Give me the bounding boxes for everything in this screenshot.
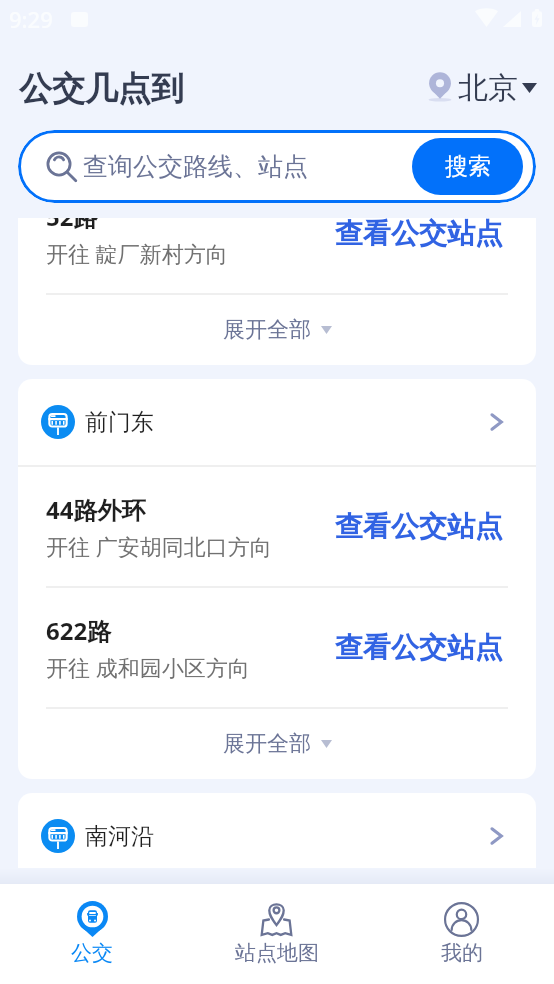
staticText: 9:29: [9, 4, 53, 34]
staticText: 展开全部: [223, 316, 311, 344]
staticText: 622路: [46, 614, 112, 647]
staticText: 南河沿: [85, 822, 154, 851]
staticText: 我的: [441, 940, 483, 966]
button[interactable]: 622路: [18, 588, 536, 707]
staticText: 前门东: [85, 408, 154, 437]
button[interactable]: 南河沿: [18, 793, 536, 868]
button[interactable]: 44路外环: [18, 467, 536, 586]
staticText: 北京: [458, 69, 518, 107]
button[interactable]: 52路: [18, 218, 536, 293]
staticText: 公交几点到: [19, 68, 184, 110]
button[interactable]: Search: [18, 130, 536, 203]
staticText: 开往 广安胡同北口方向: [46, 531, 272, 561]
staticText: 查看公交站点: [335, 509, 503, 544]
staticText: 44路外环: [46, 493, 146, 526]
button[interactable]: 展开全部: [18, 709, 536, 779]
staticText: 公交: [71, 940, 113, 966]
button[interactable]: 搜索: [412, 138, 523, 195]
staticText: 展开全部: [223, 730, 311, 758]
staticText: 查询公交路线、站点: [83, 151, 308, 182]
staticText: 52路: [46, 218, 98, 233]
staticText: 搜索: [445, 152, 491, 181]
button[interactable]: 站点地图: [184, 884, 369, 984]
button[interactable]: 展开全部: [18, 295, 536, 365]
button[interactable]: 北京: [427, 69, 537, 107]
staticText: 站点地图: [235, 940, 319, 966]
button[interactable]: 我的: [369, 884, 554, 984]
button[interactable]: 公交: [0, 884, 184, 984]
staticText: 开往 成和园小区方向: [46, 652, 250, 682]
button[interactable]: 前门东: [18, 379, 536, 465]
staticText: 开往 靛厂新村方向: [46, 238, 228, 268]
staticText: 查看公交站点: [335, 218, 503, 251]
other: Search: [47, 152, 77, 182]
staticText: 查看公交站点: [335, 630, 503, 665]
